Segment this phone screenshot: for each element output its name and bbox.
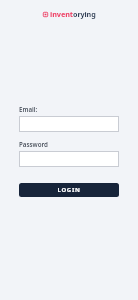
staticText: Password [19,140,48,148]
staticText: Email: [19,105,38,113]
staticText: invent [50,9,73,19]
staticText: LOGIN [57,186,81,194]
button[interactable]: Email input [19,116,119,132]
staticText: orying [73,9,96,19]
button[interactable]: LOGIN [19,183,119,197]
button[interactable]: Password input [19,151,119,167]
